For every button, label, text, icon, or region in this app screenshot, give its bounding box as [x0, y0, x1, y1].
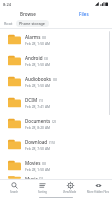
staticText: 8:24: [3, 2, 11, 7]
staticText: DCIM: [25, 97, 38, 103]
staticText: Music: [25, 176, 38, 179]
staticText: Feb 28, 8:20 AM: [25, 125, 51, 130]
button[interactable]: Root: [3, 20, 14, 27]
staticText: (0): [53, 77, 57, 82]
staticText: Feb 28, 1:50 AM: [25, 41, 51, 46]
staticText: Root: [4, 21, 13, 26]
staticText: (3): [44, 56, 48, 61]
staticText: Documents: [25, 118, 51, 124]
staticText: (1): [39, 98, 43, 103]
staticText: (1): [39, 176, 43, 179]
button[interactable]: Android: [0, 50, 112, 71]
staticText: View Mode: [63, 190, 77, 194]
staticText: Feb 28, 1:50 AM: [25, 167, 51, 172]
staticText: More Hidden Files: [87, 190, 109, 194]
staticText: Feb 28, 7:41 AM: [25, 104, 51, 109]
staticText: Download: [25, 139, 48, 145]
staticText: (0): [42, 161, 46, 166]
staticText: Sorting: [38, 190, 47, 194]
button[interactable]: Browse: [0, 8, 56, 19]
staticText: Feb 28, 1:50 AM: [25, 62, 51, 67]
button[interactable]: Search: [0, 180, 28, 195]
staticText: Feb 28, 7:50 AM: [25, 146, 51, 151]
button[interactable]: Documents: [0, 113, 112, 134]
button[interactable]: DCIM: [0, 92, 112, 113]
staticText: Search: [10, 190, 19, 194]
button[interactable]: Audiobooks: [0, 71, 112, 92]
button[interactable]: Alarms: [0, 29, 112, 50]
staticText: Browse: [20, 11, 36, 17]
button[interactable]: Files: [56, 8, 112, 19]
staticText: Audiobooks: [25, 76, 52, 82]
staticText: (0): [42, 35, 46, 40]
button[interactable]: More Hidden Files: [84, 180, 112, 195]
button[interactable]: View Mode: [56, 180, 84, 195]
staticText: Feb 28, 1:50 AM: [25, 83, 51, 88]
staticText: (15): [49, 140, 55, 145]
staticText: Phone storage: [19, 21, 46, 26]
staticText: Movies: [25, 160, 41, 166]
button[interactable]: Download: [0, 134, 112, 155]
staticText: (2): [52, 119, 56, 124]
button[interactable]: Movies: [0, 155, 112, 176]
staticText: Files: [79, 11, 89, 17]
button[interactable]: Sorting: [28, 180, 56, 195]
staticText: Alarms: [25, 34, 41, 40]
staticText: Android: [25, 55, 43, 61]
button[interactable]: Phone storage: [16, 20, 49, 27]
button[interactable]: Music: [0, 176, 112, 179]
